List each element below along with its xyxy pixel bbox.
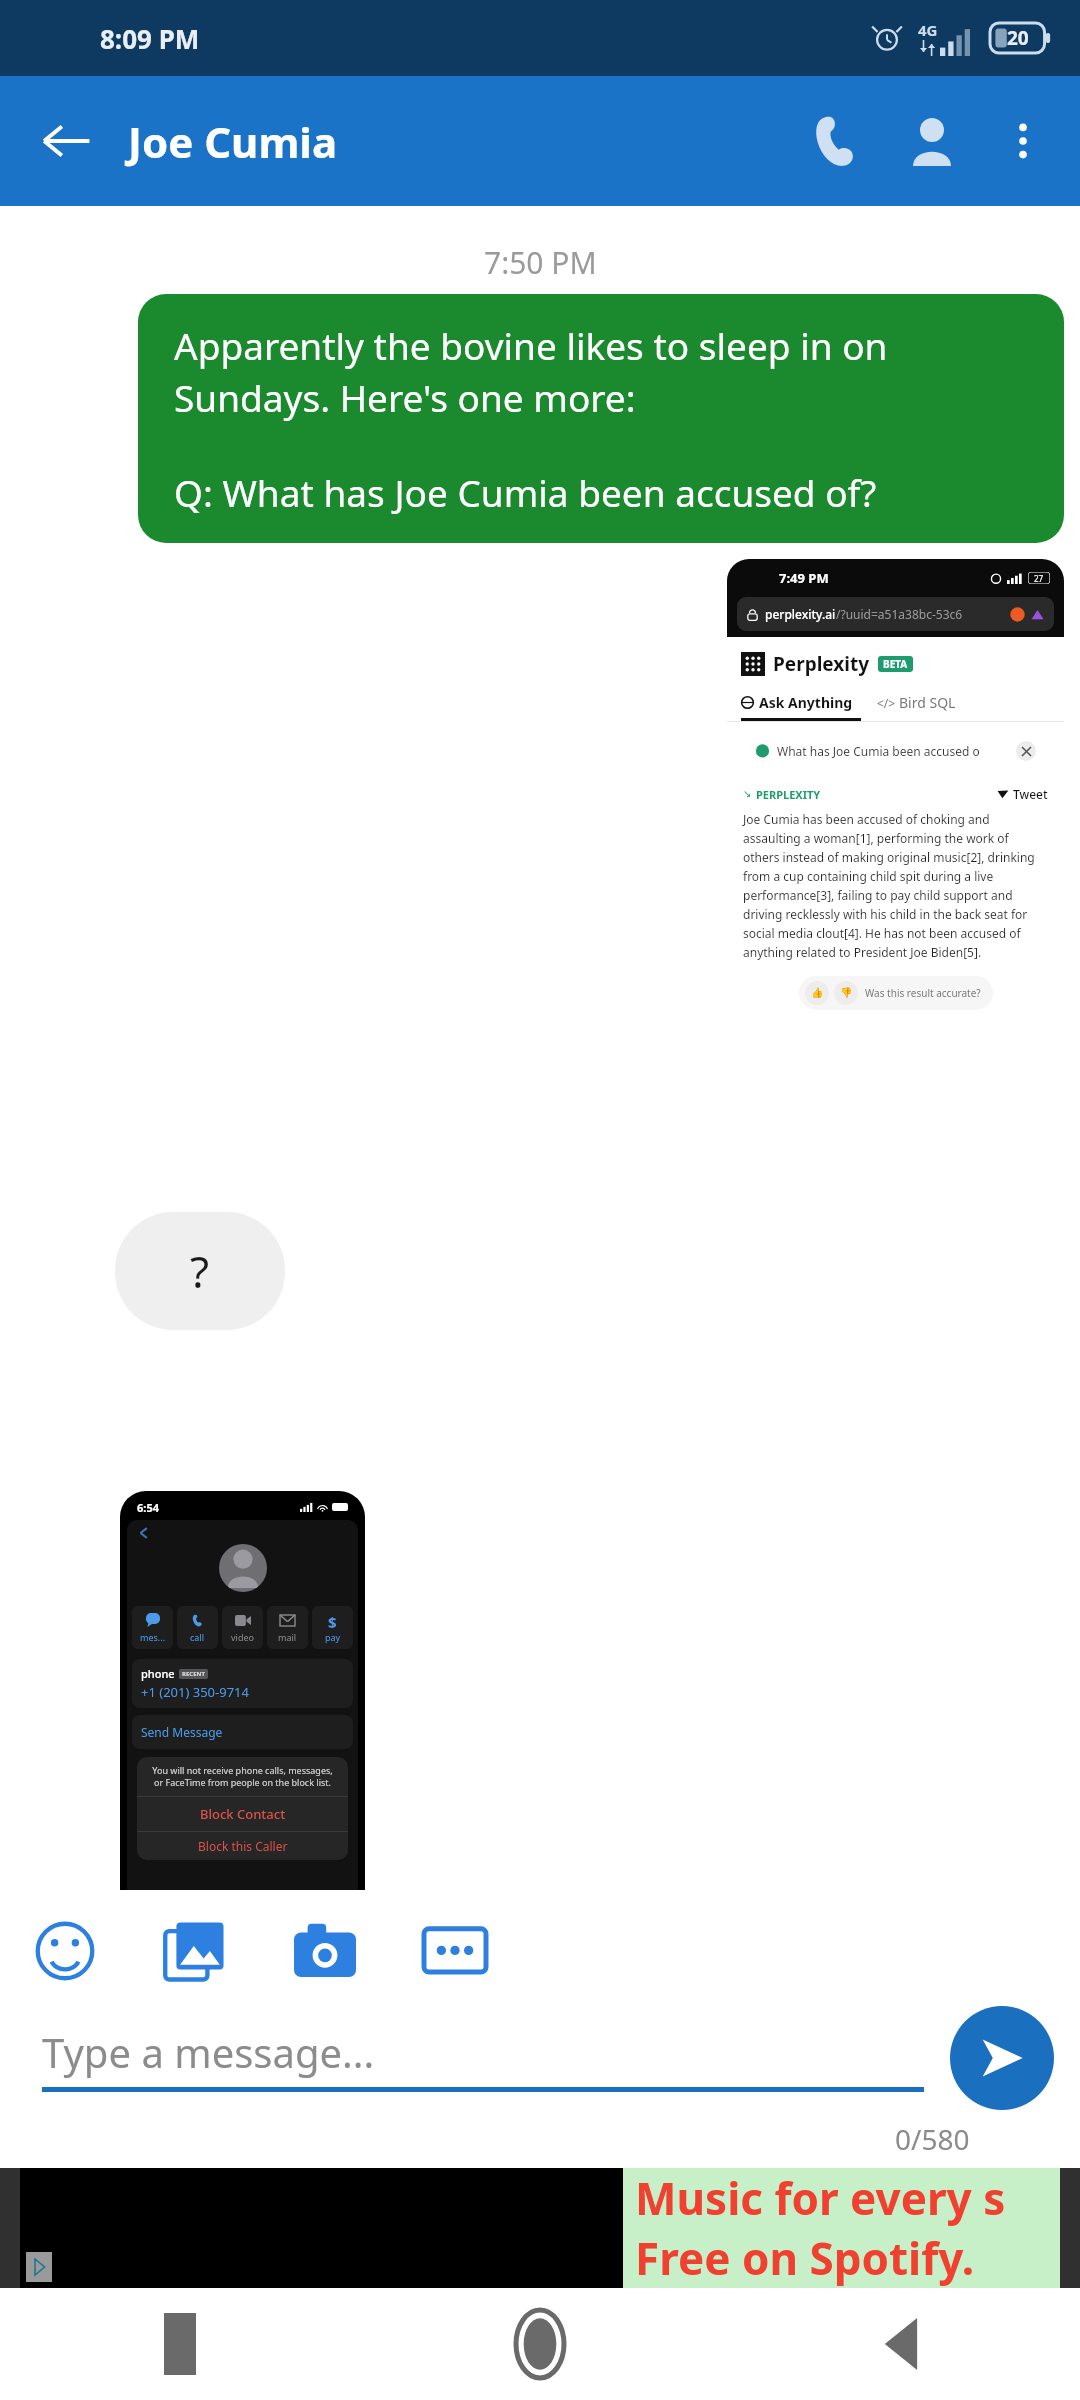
staticText: Perplexity — [773, 651, 870, 677]
staticText: Block Contact — [200, 1805, 286, 1823]
staticText: Send Message — [141, 1724, 223, 1740]
button[interactable]: Contact — [884, 93, 980, 189]
staticText: ? — [190, 1241, 210, 1301]
button[interactable]: Back — [720, 2288, 1080, 2400]
staticText: $ — [328, 1612, 337, 1628]
staticText: Was this result accurate? — [865, 986, 981, 1000]
button[interactable]: Back — [30, 105, 102, 177]
button[interactable]: Gallery — [140, 1896, 250, 2006]
staticText: 👎 — [840, 987, 853, 999]
staticText: 4G — [918, 20, 938, 40]
staticText: Joe Cumia has been accused of choking an… — [743, 811, 1048, 960]
staticText: What has Joe Cumia been accused o — [777, 743, 980, 759]
staticText: /?uuid=a51a38bc-53c6 — [836, 606, 963, 622]
button[interactable]: Contact screenshot attachment — [120, 1491, 365, 2041]
staticText: Bird SQL — [899, 693, 956, 712]
staticText: perplexity.ai — [765, 606, 836, 622]
button[interactable]: More attachments — [400, 1896, 510, 2006]
button[interactable]: Camera — [270, 1896, 380, 2006]
staticText: 7:49 PM — [779, 569, 829, 587]
button[interactable]: Home — [360, 2288, 720, 2400]
staticText: BETA — [883, 657, 908, 671]
button[interactable]: Advertisement — [0, 2168, 1080, 2288]
button[interactable]: Apparently the bovine likes to sleep in … — [138, 294, 1064, 543]
staticText: Tweet — [1013, 786, 1048, 802]
staticText: 27 — [1034, 573, 1044, 584]
staticText: J — [58, 1942, 71, 2005]
staticText: video — [231, 1631, 254, 1643]
staticText: +1 (201) 350-9714 — [141, 1683, 249, 1701]
button[interactable]: More options — [980, 93, 1066, 189]
staticText: Block this Caller — [198, 1838, 288, 1854]
button[interactable]: Type a message... — [42, 2025, 924, 2092]
button[interactable]: Emoji — [10, 1896, 120, 2006]
staticText: 8:09 PM — [100, 21, 200, 56]
staticText: mail — [278, 1631, 297, 1643]
staticText: Ask Anything — [759, 693, 853, 712]
staticText: Free on Spotify. — [635, 2228, 975, 2288]
button[interactable]: Send — [950, 2006, 1054, 2110]
staticText: PERPLEXITY — [756, 787, 821, 802]
staticText: Q: What has Joe Cumia been accused of? — [174, 467, 877, 517]
staticText: mes... — [140, 1631, 166, 1643]
staticText: ↘ — [743, 788, 752, 800]
staticText: Apparently the bovine likes to sleep in … — [174, 320, 1028, 423]
button[interactable]: Recent apps — [0, 2288, 360, 2400]
button[interactable]: ? — [115, 1212, 285, 1330]
staticText: You will not receive phone calls, messag… — [147, 1764, 338, 1789]
button[interactable]: Call — [788, 93, 884, 189]
staticText: pay — [325, 1631, 341, 1643]
staticText: 6:54 — [137, 1500, 159, 1515]
button[interactable]: J — [22, 1931, 107, 2016]
staticText: call — [190, 1631, 205, 1643]
staticText: Music for every s — [635, 2168, 1006, 2228]
staticText: 20 — [1007, 25, 1029, 51]
staticText: 0/580 — [895, 2120, 970, 2158]
staticText: 7:50 PM — [484, 242, 597, 283]
staticText: RECENT — [182, 1670, 205, 1678]
staticText: Type a message... — [42, 2025, 375, 2079]
staticText: </> — [877, 695, 896, 711]
staticText: 👍 — [811, 987, 824, 999]
button[interactable]: Perplexity screenshot attachment — [727, 559, 1064, 1338]
staticText: Joe Cumia — [128, 113, 338, 170]
staticText: phone — [141, 1666, 175, 1681]
